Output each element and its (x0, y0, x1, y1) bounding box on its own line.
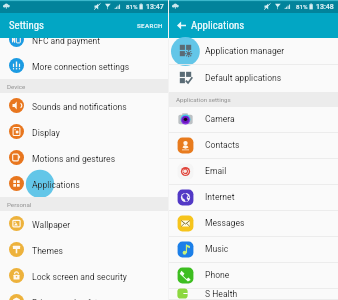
staticText: Personal (7, 201, 32, 208)
staticText: Messages (205, 218, 245, 228)
staticText: Motions and gestures (32, 154, 116, 164)
staticText: Music (205, 244, 229, 254)
staticText: Default applications (205, 73, 282, 83)
button[interactable]: More connection settings (0, 53, 168, 79)
staticText: 81% (126, 3, 138, 10)
button[interactable]: Messages (169, 211, 338, 237)
staticText: NFC and payment (32, 36, 101, 46)
staticText: Applications (32, 180, 80, 190)
button[interactable]: Camera (169, 107, 338, 133)
button[interactable]: Display (0, 119, 168, 145)
button[interactable]: Back (173, 17, 190, 34)
button[interactable]: Phone (169, 263, 338, 289)
staticText: Internet (205, 192, 235, 202)
button[interactable]: Internet (169, 185, 338, 211)
staticText: S Health (205, 289, 238, 299)
button[interactable]: Applications (0, 171, 168, 197)
staticText: Device (7, 83, 26, 90)
button[interactable]: Motions and gestures (0, 145, 168, 171)
button[interactable]: Email (169, 159, 338, 185)
staticText: Settings (9, 19, 45, 32)
button[interactable]: SEARCH (132, 17, 168, 34)
staticText: Privacy and safety (32, 298, 102, 300)
button[interactable]: Contacts (169, 133, 338, 159)
staticText: Sounds and notifications (32, 102, 127, 112)
staticText: 81% (296, 3, 308, 10)
staticText: SEARCH (137, 22, 163, 29)
staticText: 13:48 (316, 3, 334, 11)
staticText: Display (32, 128, 60, 138)
button[interactable]: NFC and payment (0, 27, 168, 53)
staticText: Camera (205, 114, 235, 124)
button[interactable]: Lock screen and security (0, 263, 168, 289)
button[interactable]: Music (169, 237, 338, 263)
button[interactable]: Application manager (169, 38, 338, 65)
staticText: Contacts (205, 140, 240, 150)
staticText: Applications (191, 19, 245, 32)
staticText: More connection settings (32, 62, 130, 72)
button[interactable]: S Health (169, 289, 338, 300)
staticText: Phone (205, 270, 230, 280)
staticText: Email (205, 166, 227, 176)
button[interactable]: Wallpaper (0, 211, 168, 237)
button[interactable]: Default applications (169, 65, 338, 92)
button[interactable]: Themes (0, 237, 168, 263)
staticText: Lock screen and security (32, 272, 127, 282)
staticText: Wallpaper (32, 220, 71, 230)
staticText: 13:47 (146, 3, 164, 11)
button[interactable]: Sounds and notifications (0, 93, 168, 119)
staticText: Application settings (176, 96, 231, 103)
staticText: Themes (32, 246, 63, 256)
button[interactable]: Privacy and safety (0, 289, 168, 300)
staticText: Application manager (205, 46, 285, 56)
